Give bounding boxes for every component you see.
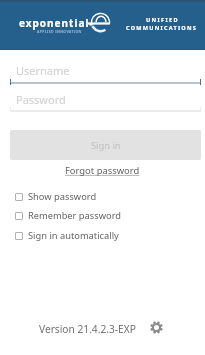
staticText: Show password [28,190,97,203]
staticText: Username [16,63,70,78]
staticText: exponential- [19,16,94,30]
button[interactable]: Sign in automatically [10,226,192,245]
staticText: Version 21.4.2.3-EXP [39,322,136,336]
button[interactable]: Forgot password [65,164,140,177]
staticText: Sign in [91,139,121,152]
staticText: Password [16,92,66,107]
button[interactable]: Settings [148,319,165,336]
staticText: COMMUNICATIONS [126,24,198,32]
staticText: Sign in automatically [28,229,119,242]
button[interactable]: Show password [10,187,192,206]
staticText: UNIFIED [146,16,179,24]
staticText: Remember password [28,209,122,222]
staticText: APPLIED INNOVATION [37,29,82,34]
button[interactable]: Remember password [10,206,192,225]
